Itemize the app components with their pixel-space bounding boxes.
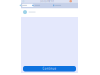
staticText: Continue xyxy=(42,67,56,70)
button[interactable]: Account xyxy=(69,0,78,2)
button[interactable] xyxy=(22,4,33,7)
button[interactable]: Back xyxy=(21,0,25,2)
button[interactable] xyxy=(55,4,68,7)
staticText: Document xyxy=(40,0,54,3)
button[interactable]: Continue xyxy=(23,66,76,71)
button[interactable] xyxy=(34,4,46,7)
